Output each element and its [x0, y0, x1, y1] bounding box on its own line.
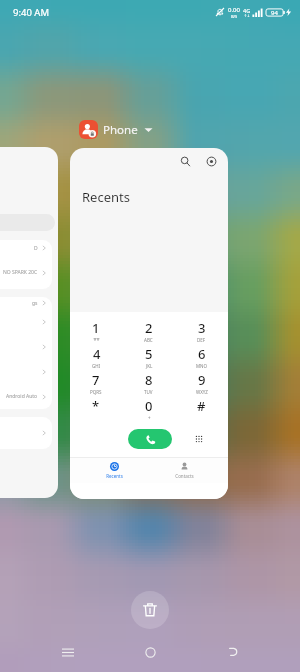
button[interactable]: Keypad: [191, 431, 207, 447]
staticText: TUV: [144, 389, 153, 395]
staticText: 4G: [243, 7, 251, 14]
staticText: 7: [92, 371, 100, 389]
button[interactable]: Clear all: [131, 591, 169, 629]
button[interactable]: Home: [135, 637, 165, 667]
staticText: 4: [93, 345, 101, 363]
staticText: Recents: [106, 473, 123, 479]
staticText: 8: [145, 371, 153, 389]
staticText: GHI: [92, 363, 101, 369]
staticText: 94: [271, 9, 278, 17]
button[interactable]: #: [175, 397, 228, 423]
staticText: *: [92, 397, 100, 415]
button[interactable]: Search: [176, 152, 194, 170]
button[interactable]: 3: [175, 319, 228, 345]
staticText: Contacts: [175, 473, 194, 479]
staticText: PQRS: [90, 389, 102, 395]
button[interactable]: 2: [122, 319, 175, 345]
staticText: NO SPARK 20C: [3, 269, 38, 276]
button[interactable]: 5: [122, 345, 175, 371]
button[interactable]: More options: [202, 152, 220, 170]
staticText: 2: [145, 319, 153, 337]
button[interactable]: D: [0, 147, 58, 498]
button[interactable]: Call: [128, 429, 172, 449]
button[interactable]: Back: [218, 637, 248, 667]
staticText: Recents: [82, 188, 130, 206]
staticText: JKL: [146, 363, 153, 369]
staticText: DEF: [197, 337, 206, 343]
staticText: 0.00: [228, 6, 240, 14]
button[interactable]: 1: [70, 319, 122, 345]
staticText: 1: [92, 319, 100, 337]
button[interactable]: Recents: [83, 458, 145, 483]
staticText: 5: [145, 345, 153, 363]
staticText: 9:40 AM: [13, 6, 50, 19]
staticText: 6: [198, 345, 206, 363]
button[interactable]: 9: [175, 371, 228, 397]
staticText: Phone: [103, 122, 138, 138]
staticText: #: [197, 397, 206, 415]
staticText: MNO: [196, 363, 208, 369]
button[interactable]: *: [70, 397, 122, 423]
staticText: ABC: [144, 337, 153, 343]
button[interactable]: Phone: [79, 120, 153, 139]
staticText: 3: [198, 319, 206, 337]
staticText: 9: [198, 371, 206, 389]
button[interactable]: 7: [70, 371, 122, 397]
button[interactable]: 4: [70, 345, 122, 371]
staticText: B/S: [231, 14, 238, 19]
staticText: D: [34, 245, 38, 252]
button[interactable]: 0: [122, 397, 175, 423]
button[interactable]: 8: [122, 371, 175, 397]
button[interactable]: Contacts: [153, 458, 215, 483]
staticText: 0: [145, 397, 153, 415]
button[interactable]: Recents: [53, 637, 83, 667]
staticText: ↑↓: [244, 14, 250, 18]
staticText: +: [148, 415, 151, 421]
staticText: Android Auto: [6, 393, 38, 400]
staticText: gs: [32, 300, 38, 307]
button[interactable]: Search: [70, 148, 228, 499]
button[interactable]: 6: [175, 345, 228, 371]
staticText: WXYZ: [196, 389, 208, 395]
